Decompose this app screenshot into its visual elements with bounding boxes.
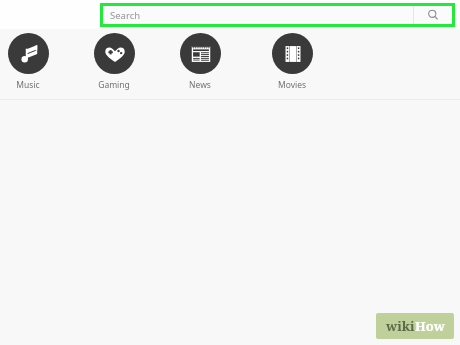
button[interactable]: Movies [261,33,323,91]
button[interactable]: Music [0,33,59,91]
staticText: Movies [261,79,323,91]
staticText: News [169,79,231,91]
button[interactable]: Gaming [83,33,145,91]
staticText: Search [110,9,141,22]
staticText: wiki [386,317,415,335]
button[interactable]: News [169,33,231,91]
button[interactable]: Search [414,6,452,24]
staticText: Gaming [83,79,145,91]
staticText: Music [0,79,59,91]
button[interactable]: Search [103,6,452,24]
staticText: How [415,317,445,335]
